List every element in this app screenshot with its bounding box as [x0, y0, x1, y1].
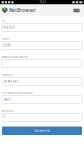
button[interactable]: Применить — [2, 126, 82, 135]
staticText: 0.0.0.0 — [4, 26, 15, 29]
staticText: 95747337 — [4, 80, 19, 83]
button[interactable]: Menu — [71, 7, 82, 14]
staticText: Применить — [33, 129, 50, 132]
staticText: IP — [2, 19, 5, 23]
staticText: 11:07 — [39, 1, 46, 4]
staticText: Точка монтирования — [2, 91, 32, 95]
staticText: Версия — [2, 109, 13, 113]
staticText: /хост — [4, 98, 11, 101]
staticText: NetBrowser — [9, 8, 36, 13]
staticText: Порт — [2, 37, 9, 41]
staticText: 21.01 — [4, 44, 11, 47]
staticText: Имя пользователя — [2, 55, 27, 59]
staticText: Пароль — [2, 73, 12, 77]
staticText: 1 — [4, 116, 5, 119]
